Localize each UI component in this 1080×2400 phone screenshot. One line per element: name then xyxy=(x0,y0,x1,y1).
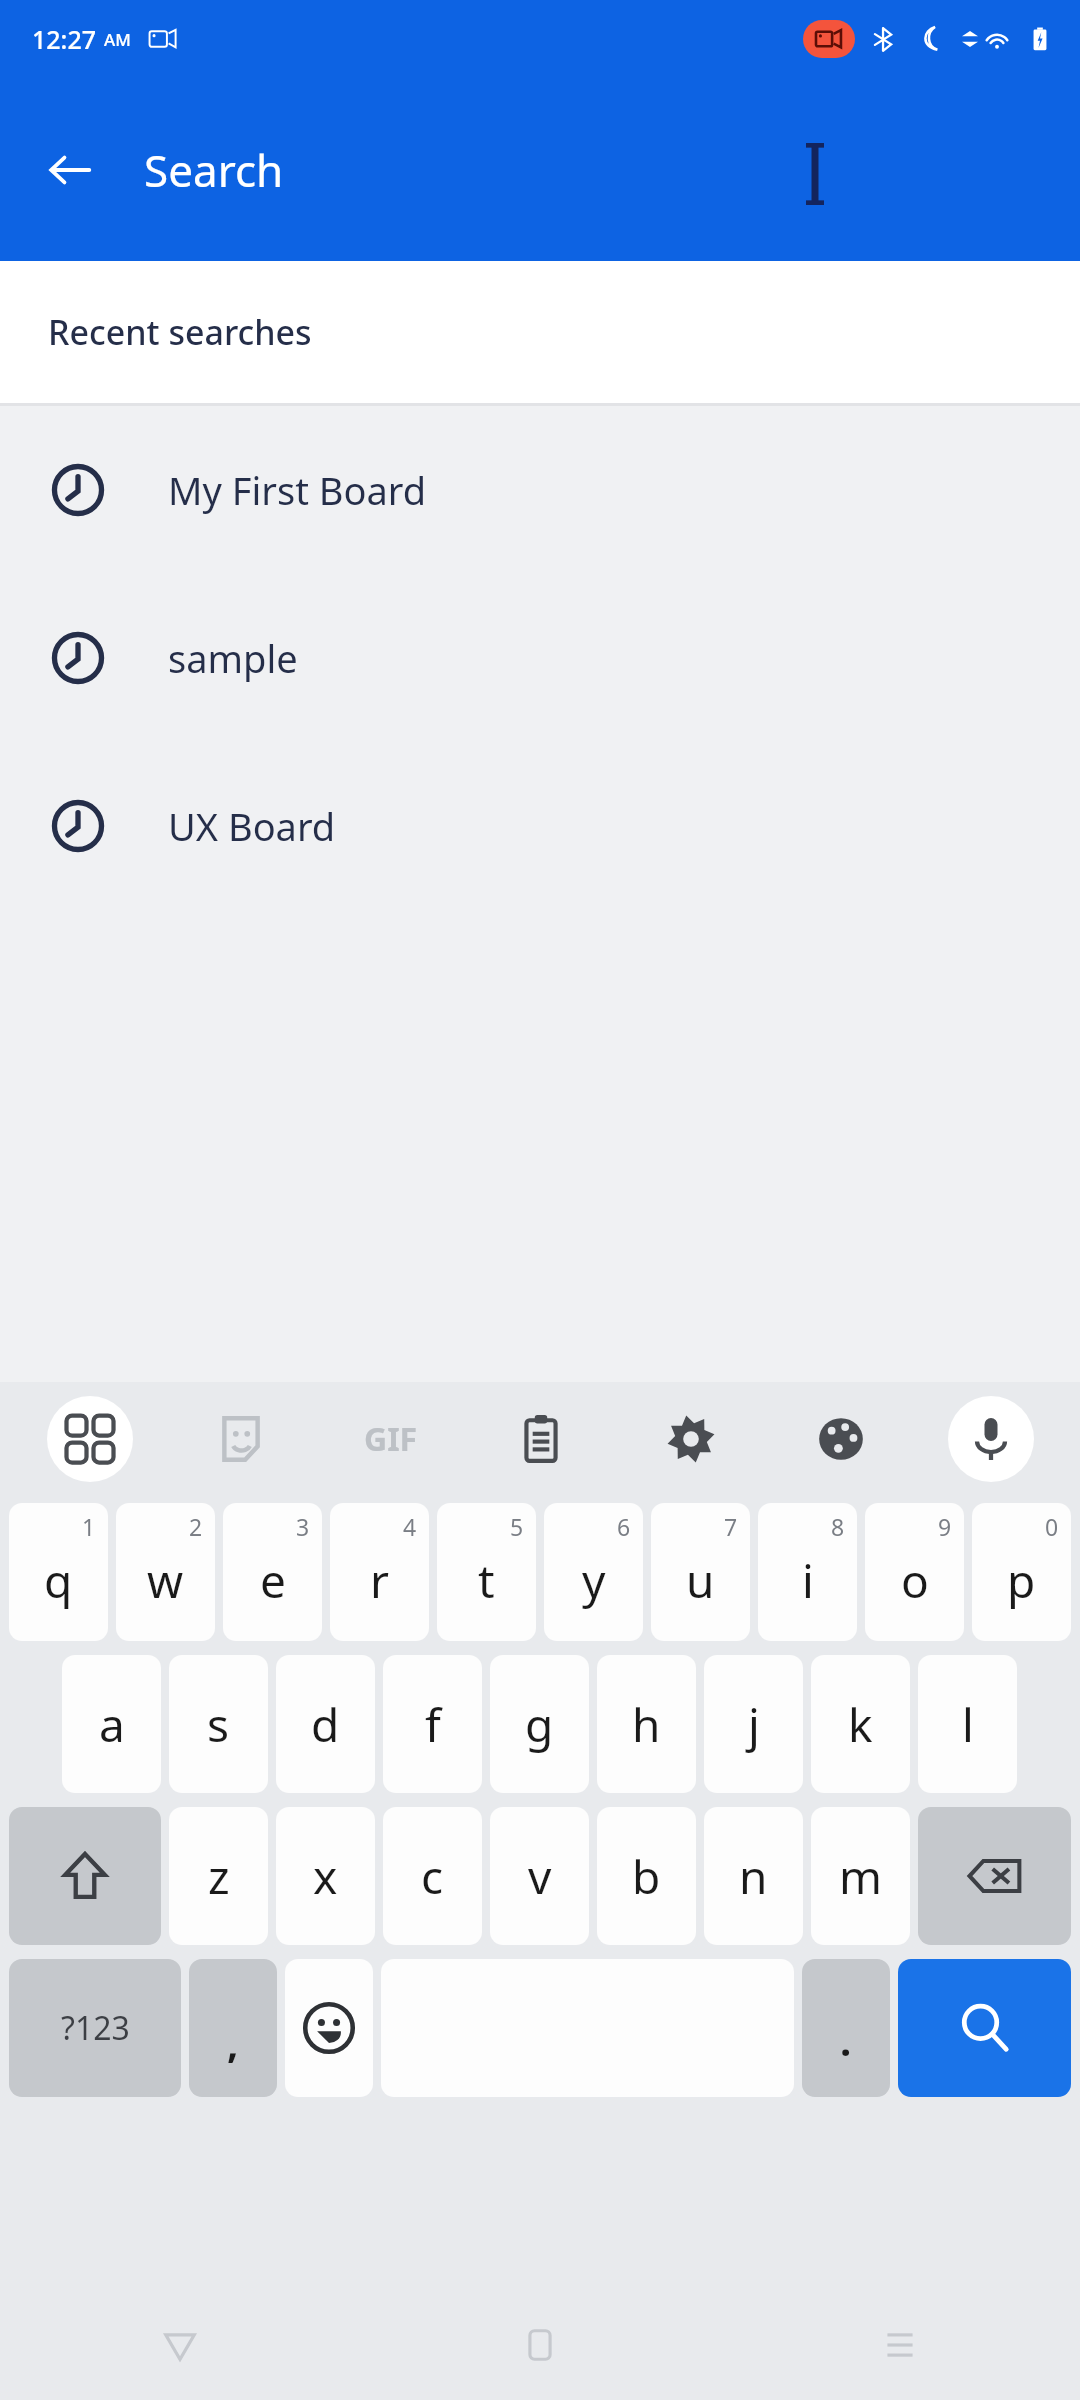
staticText: , xyxy=(227,2015,239,2069)
staticText: 1 xyxy=(82,1511,96,1542)
staticText: o xyxy=(901,1549,929,1612)
button[interactable]: x xyxy=(276,1807,375,1945)
button[interactable]: Backspace xyxy=(918,1807,1071,1945)
button[interactable]: r xyxy=(330,1503,429,1641)
button[interactable]: l xyxy=(918,1655,1017,1793)
staticText: b xyxy=(632,1845,661,1908)
staticText: 6 xyxy=(617,1511,631,1542)
staticText: Search xyxy=(144,140,284,200)
staticText: a xyxy=(99,1693,125,1756)
button[interactable]: j xyxy=(704,1655,803,1793)
button[interactable]: s xyxy=(169,1655,268,1793)
button[interactable]: Stickers xyxy=(165,1382,316,1496)
button[interactable]: g xyxy=(490,1655,589,1793)
staticText: Recent searches xyxy=(48,309,312,355)
staticText: 2 xyxy=(189,1511,203,1542)
button[interactable]: ?123 xyxy=(9,1959,181,2097)
staticText: m xyxy=(839,1845,883,1908)
staticText: 0 xyxy=(1045,1511,1059,1542)
staticText: q xyxy=(44,1549,73,1612)
staticText: h xyxy=(632,1693,661,1756)
button[interactable]: Emoji xyxy=(285,1959,373,2097)
staticText: y xyxy=(582,1549,606,1612)
staticText: 8 xyxy=(831,1511,845,1542)
staticText: z xyxy=(208,1845,230,1908)
button[interactable]: k xyxy=(811,1655,910,1793)
staticText: n xyxy=(739,1845,768,1908)
button[interactable]: z xyxy=(169,1807,268,1945)
button[interactable]: n xyxy=(704,1807,803,1945)
button[interactable]: t xyxy=(437,1503,536,1641)
staticText: u xyxy=(686,1549,715,1612)
button[interactable]: Themes xyxy=(766,1382,916,1496)
button[interactable]: f xyxy=(383,1655,482,1793)
button[interactable]: UX Board xyxy=(0,742,1080,910)
staticText: r xyxy=(370,1549,389,1612)
staticText: 9 xyxy=(938,1511,952,1542)
staticText: g xyxy=(525,1693,554,1756)
staticText: s xyxy=(207,1693,230,1756)
staticText: 4 xyxy=(403,1511,417,1542)
staticText: 3 xyxy=(296,1511,310,1542)
button[interactable]: e xyxy=(223,1503,322,1641)
button[interactable]: p xyxy=(972,1503,1071,1641)
button[interactable]: Period xyxy=(802,1959,890,2097)
staticText: d xyxy=(311,1693,340,1756)
button[interactable]: w xyxy=(116,1503,215,1641)
staticText: f xyxy=(425,1693,441,1756)
staticText: My First Board xyxy=(168,464,427,516)
staticText: e xyxy=(260,1549,286,1612)
button[interactable]: h xyxy=(597,1655,696,1793)
button[interactable]: Shift xyxy=(9,1807,161,1945)
button[interactable]: d xyxy=(276,1655,375,1793)
button[interactable]: Settings xyxy=(616,1382,766,1496)
button[interactable]: My First Board xyxy=(0,406,1080,574)
staticText: GIF xyxy=(364,1417,418,1461)
staticText: i xyxy=(802,1549,814,1612)
button[interactable]: GIF xyxy=(316,1382,466,1496)
staticText: UX Board xyxy=(168,800,336,852)
staticText: AM xyxy=(104,28,131,51)
staticText: l xyxy=(962,1693,974,1756)
button[interactable]: y xyxy=(544,1503,643,1641)
staticText: k xyxy=(848,1693,873,1756)
button[interactable]: sample xyxy=(0,574,1080,742)
button[interactable]: Voice input xyxy=(916,1382,1066,1496)
staticText: sample xyxy=(168,632,298,684)
button[interactable]: Back xyxy=(26,126,114,214)
button[interactable]: m xyxy=(811,1807,910,1945)
staticText: x xyxy=(313,1845,338,1908)
staticText: . xyxy=(840,2013,852,2067)
staticText: 5 xyxy=(510,1511,524,1542)
button[interactable]: Keyboard switcher xyxy=(14,1382,165,1496)
button[interactable]: Clipboard xyxy=(466,1382,616,1496)
button[interactable]: u xyxy=(651,1503,750,1641)
staticText: t xyxy=(478,1549,495,1612)
staticText: p xyxy=(1007,1549,1036,1612)
button[interactable]: q xyxy=(9,1503,108,1641)
staticText: 12:27 xyxy=(32,22,97,56)
button[interactable]: i xyxy=(758,1503,857,1641)
button[interactable]: v xyxy=(490,1807,589,1945)
button[interactable]: a xyxy=(62,1655,161,1793)
button[interactable]: o xyxy=(865,1503,964,1641)
button[interactable]: c xyxy=(383,1807,482,1945)
staticText: 7 xyxy=(724,1511,738,1542)
button[interactable]: Search xyxy=(898,1959,1071,2097)
staticText: w xyxy=(147,1549,184,1612)
staticText: v xyxy=(528,1845,552,1908)
button[interactable]: Comma xyxy=(189,1959,277,2097)
staticText: ?123 xyxy=(61,2006,130,2050)
button[interactable]: b xyxy=(597,1807,696,1945)
staticText: c xyxy=(421,1845,444,1908)
staticText: j xyxy=(748,1693,760,1756)
